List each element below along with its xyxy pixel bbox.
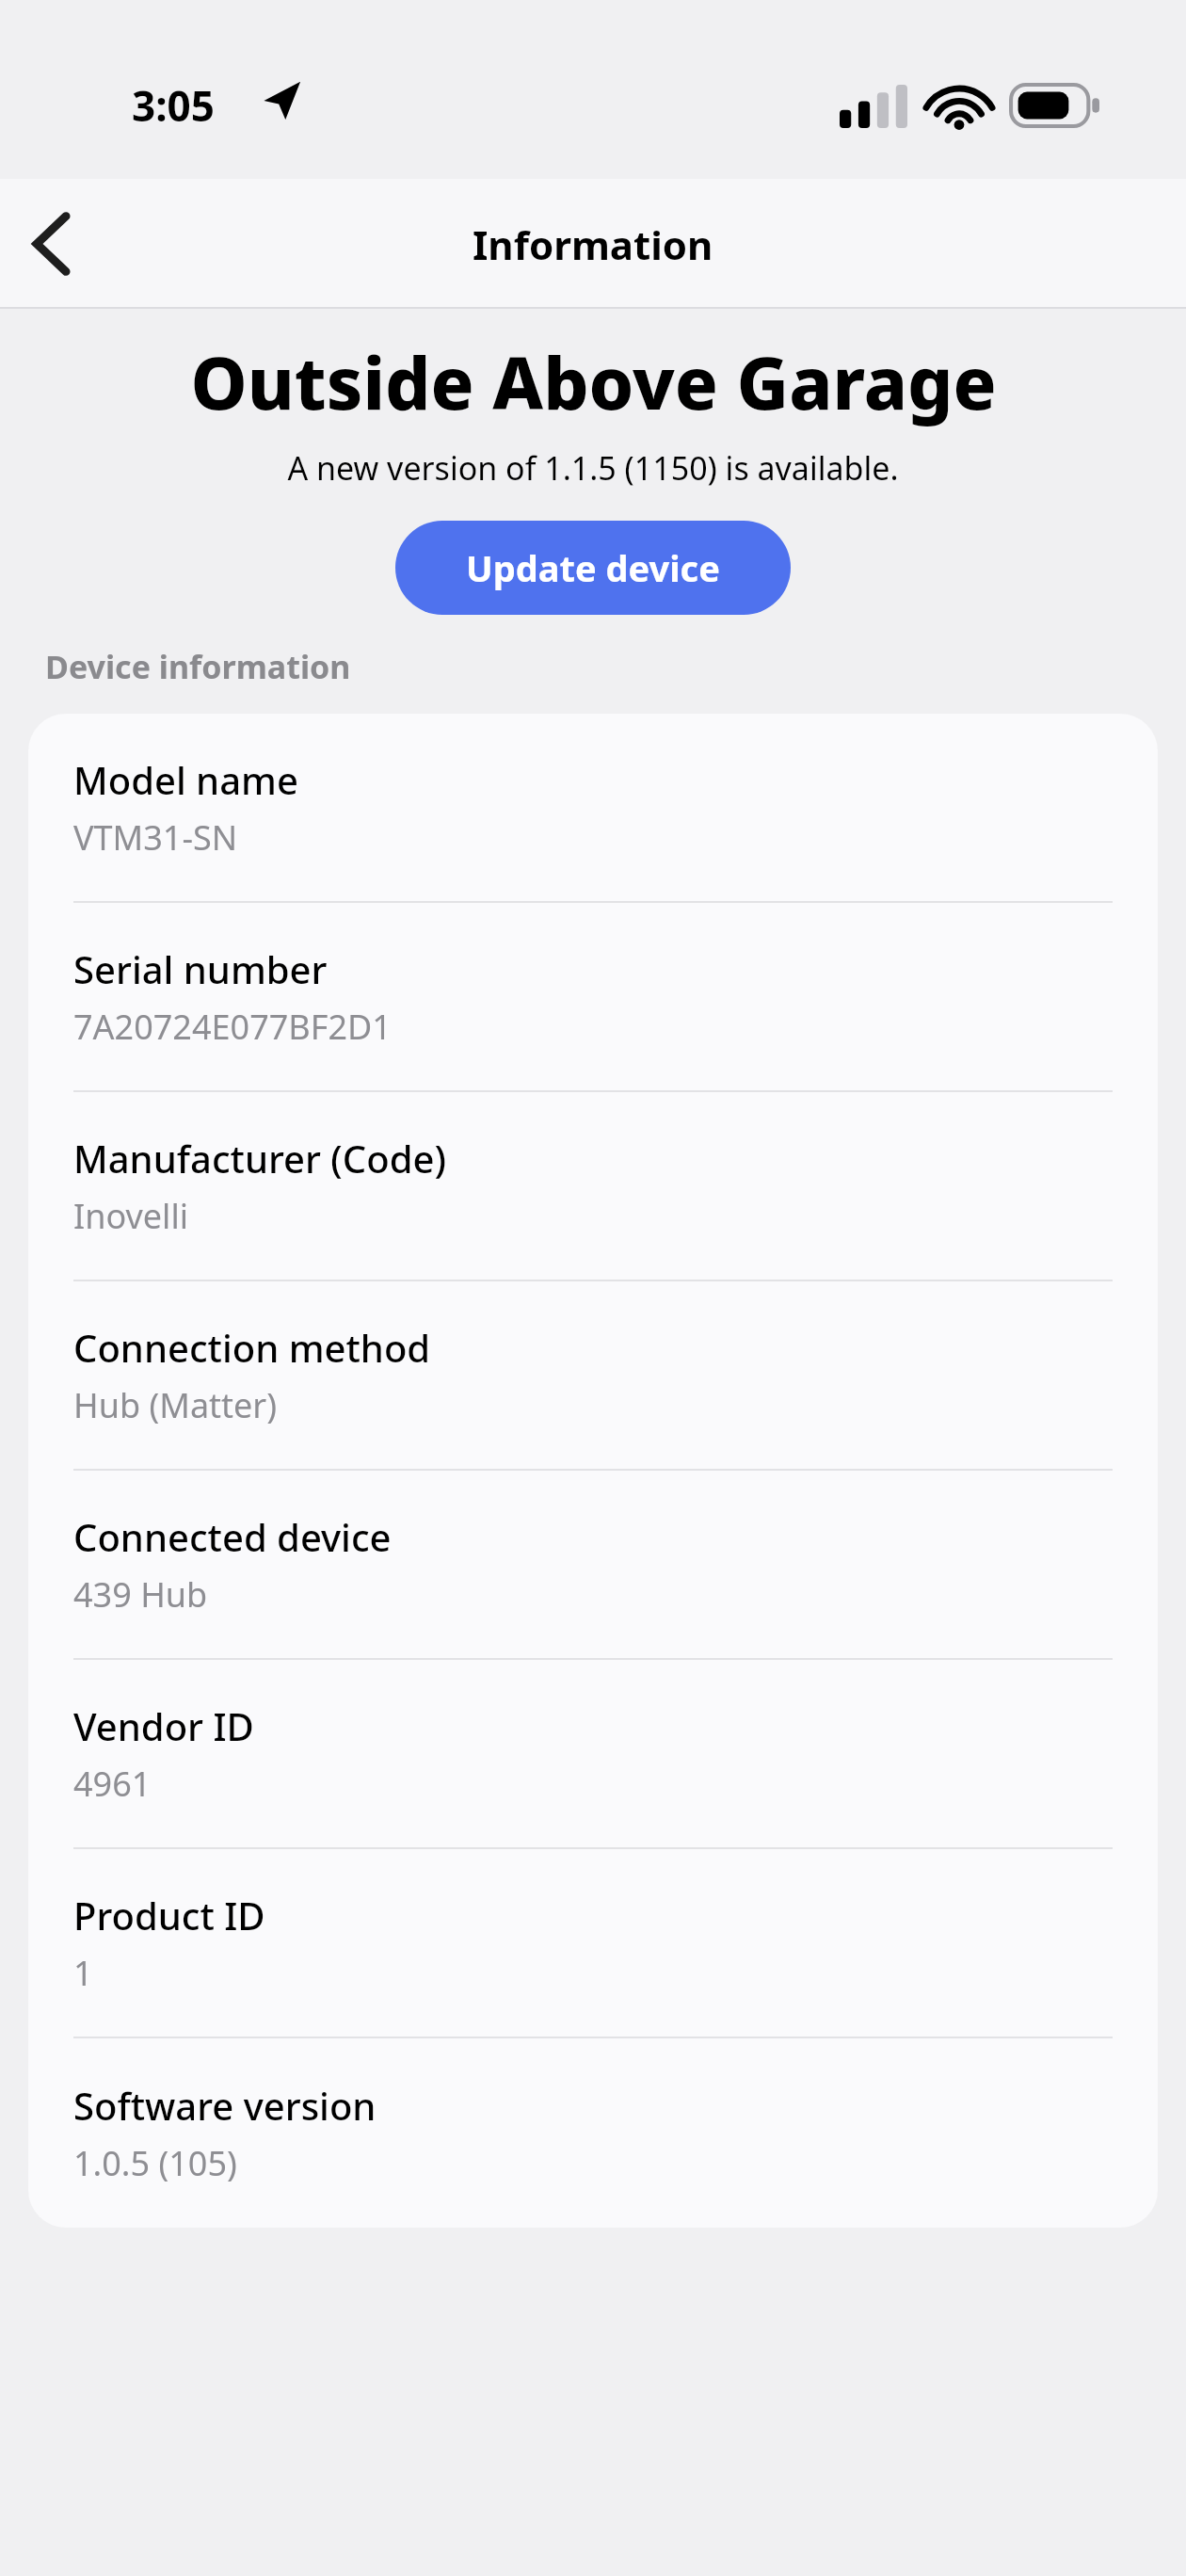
button[interactable]: Connection method: [28, 1281, 1158, 1471]
button[interactable]: Vendor ID: [28, 1660, 1158, 1849]
staticText: Inovelli: [73, 1193, 188, 1239]
staticText: Hub (Matter): [73, 1382, 278, 1428]
button[interactable]: Model name: [28, 714, 1158, 903]
staticText: Information: [473, 217, 713, 271]
staticText: Connection method: [73, 1322, 431, 1373]
staticText: VTM31-SN: [73, 814, 238, 861]
button[interactable]: Software version: [28, 2038, 1158, 2228]
staticText: Product ID: [73, 1890, 265, 1940]
staticText: Manufacturer (Code): [73, 1133, 446, 1183]
staticText: Model name: [73, 754, 298, 805]
staticText: A new version of 1.1.5 (1150) is availab…: [287, 446, 899, 490]
staticText: Update device: [466, 543, 720, 592]
staticText: 439 Hub: [73, 1571, 208, 1618]
staticText: 1: [73, 1950, 93, 1996]
button[interactable]: Product ID: [28, 1849, 1158, 2038]
staticText: Software version: [73, 2080, 377, 2131]
staticText: Device information: [45, 645, 351, 688]
button[interactable]: Update device: [395, 521, 791, 615]
staticText: 1.0.5 (105): [73, 2140, 237, 2186]
staticText: 4961: [73, 1761, 152, 1807]
staticText: Serial number: [73, 943, 328, 994]
staticText: 3:05: [132, 77, 215, 134]
staticText: Vendor ID: [73, 1700, 254, 1751]
staticText: Outside Above Garage: [190, 333, 997, 431]
staticText: 7A20724E077BF2D1: [73, 1004, 392, 1050]
button[interactable]: Connected device: [28, 1471, 1158, 1660]
button[interactable]: Manufacturer (Code): [28, 1092, 1158, 1281]
button[interactable]: Serial number: [28, 903, 1158, 1092]
staticText: Connected device: [73, 1511, 392, 1562]
button[interactable]: Back: [0, 192, 104, 296]
